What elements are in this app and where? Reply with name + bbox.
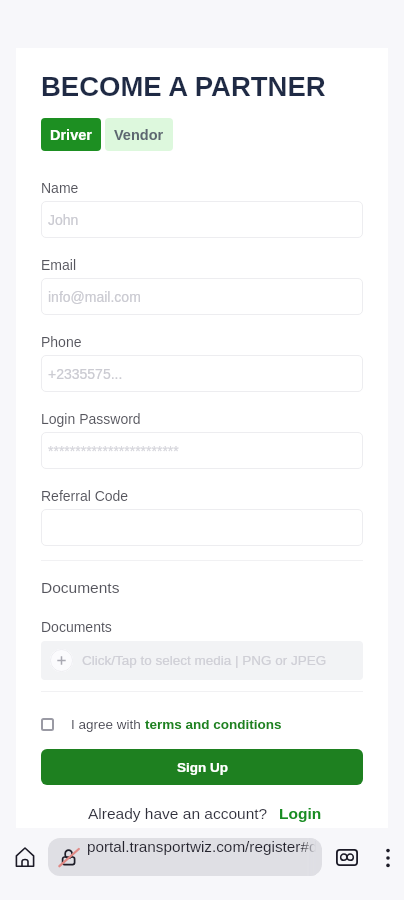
staticText: Name: [41, 180, 79, 196]
button[interactable]: Vendor: [105, 118, 173, 151]
staticText: Login Password: [41, 411, 141, 427]
button[interactable]: Not secure: [48, 838, 322, 876]
staticText: Email: [41, 257, 77, 273]
staticText: portal.transportwiz.com/register#d: [87, 838, 316, 855]
button[interactable]: Home: [9, 841, 40, 872]
button[interactable]: I agree with: [41, 714, 282, 734]
staticText: Documents: [41, 619, 112, 635]
staticText: BECOME A PARTNER: [41, 71, 326, 102]
staticText: Click/Tap to select media | PNG or JPEG: [82, 653, 327, 668]
staticText: Phone: [41, 334, 82, 350]
button[interactable]: ************************: [41, 432, 363, 469]
staticText: John: [48, 212, 79, 228]
staticText: I agree with: [71, 717, 145, 732]
button[interactable]: [41, 509, 363, 546]
button[interactable]: info@mail.com: [41, 278, 363, 315]
button[interactable]: More options: [377, 847, 399, 869]
button[interactable]: Sign Up: [41, 749, 363, 785]
button[interactable]: Driver: [41, 118, 101, 151]
other: Not secure: [59, 847, 79, 867]
staticText: Vendor: [114, 127, 164, 143]
staticText: Already have an account?: [88, 805, 268, 822]
staticText: Driver: [50, 127, 92, 143]
button[interactable]: Login: [279, 805, 322, 822]
button[interactable]: Tabs: [333, 846, 360, 869]
staticText: Documents: [41, 579, 120, 596]
button[interactable]: John: [41, 201, 363, 238]
button[interactable]: Click/Tap to select media | PNG or JPEG: [41, 641, 363, 680]
staticText: Sign Up: [177, 760, 228, 775]
button[interactable]: +2335575...: [41, 355, 363, 392]
staticText: Login: [279, 805, 322, 822]
staticText: +2335575...: [48, 366, 123, 382]
staticText: terms and conditions: [145, 717, 282, 732]
staticText: Referral Code: [41, 488, 129, 504]
staticText: info@mail.com: [48, 289, 141, 305]
staticText: ************************: [48, 443, 179, 459]
